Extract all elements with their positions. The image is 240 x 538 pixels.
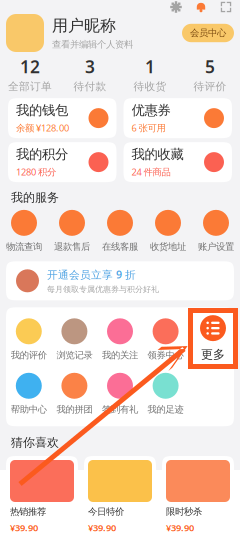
button[interactable]: 我的足迹 (143, 373, 188, 415)
staticText: ¥39.90 (88, 521, 116, 534)
staticText: 我的收藏 (131, 146, 183, 163)
staticText: 查看并编辑个人资料 (52, 39, 133, 50)
staticText: 浏览记录 (56, 349, 92, 361)
staticText: 开通会员立享 9 折 (47, 267, 136, 281)
staticText: ¥39.90 (10, 521, 38, 534)
staticText: 帮助中心 (11, 404, 47, 415)
staticText: 我的拼团 (56, 404, 92, 415)
staticText: 优惠券 (131, 102, 170, 119)
staticText: 更多 (202, 349, 220, 361)
button[interactable]: 设置 (170, 1, 182, 13)
staticText: 待收货 (133, 80, 166, 93)
button[interactable]: 今日特价 (84, 456, 156, 538)
staticText: 待评价 (193, 80, 226, 93)
staticText: 今日特价 (88, 506, 124, 517)
staticText: 我的评价 (11, 349, 47, 361)
staticText: 余额 ¥128.00 (16, 122, 69, 134)
staticText: 限时秒杀 (166, 506, 202, 517)
button[interactable]: 帮助中心 (6, 373, 52, 415)
button[interactable]: 浏览记录 (52, 318, 97, 361)
staticText: 我的积分 (16, 146, 68, 163)
button[interactable]: 签到有礼 (97, 373, 143, 415)
button[interactable]: 我的收藏 (123, 142, 232, 182)
staticText: 全部订单 (8, 80, 52, 93)
button[interactable]: 我的积分 (8, 142, 116, 182)
button[interactable]: 我的钱包 (8, 98, 116, 138)
staticText: 会员中心 (190, 27, 226, 39)
staticText: 6 张可用 (131, 122, 165, 134)
button[interactable]: 消息 (195, 1, 207, 13)
staticText: 3 (85, 55, 95, 78)
staticText: 退款售后 (54, 241, 90, 252)
button[interactable]: 热销推荐 (6, 456, 78, 538)
button[interactable]: 物流查询 (0, 210, 48, 252)
staticText: 领券中心 (148, 349, 184, 361)
button[interactable]: 退款售后 (48, 210, 96, 252)
button[interactable]: 3 (60, 55, 120, 93)
button[interactable]: 在线客服 (96, 210, 144, 252)
button[interactable]: 会员中心 (182, 24, 234, 42)
button[interactable]: 限时秒杀 (162, 456, 234, 538)
staticText: 我的足迹 (148, 404, 184, 415)
button[interactable]: 优惠券 (123, 98, 232, 138)
staticText: 我的服务 (11, 190, 59, 205)
staticText: 待付款 (73, 80, 106, 93)
staticText: 1 (145, 55, 155, 78)
staticText: 物流查询 (6, 241, 42, 252)
staticText: 热销推荐 (10, 506, 46, 517)
button[interactable]: 5 (180, 55, 240, 93)
staticText: 签到有礼 (102, 404, 138, 415)
staticText: 24 件商品 (131, 166, 170, 178)
staticText: 每月领取专属优惠券与积分好礼 (47, 284, 159, 294)
staticText: 更多 (201, 347, 225, 362)
button[interactable]: 账户设置 (192, 210, 240, 252)
button[interactable]: 12 (0, 55, 60, 93)
button[interactable]: 我的评价 (6, 318, 52, 361)
button[interactable]: 收货地址 (144, 210, 192, 252)
staticText: ¥39.90 (166, 521, 194, 534)
staticText: 账户设置 (198, 241, 234, 252)
staticText: 我的钱包 (16, 102, 68, 119)
button[interactable]: 我的关注 (97, 318, 143, 361)
staticText: 用户昵称 (52, 16, 116, 36)
button[interactable]: 1 (120, 55, 180, 93)
staticText: 猜你喜欢 (11, 435, 59, 450)
button[interactable]: 我的拼团 (52, 373, 97, 415)
staticText: 在线客服 (102, 241, 138, 252)
staticText: 收货地址 (150, 241, 186, 252)
button[interactable]: 更多 (188, 318, 234, 361)
button[interactable]: 更多 (188, 308, 238, 369)
button[interactable]: 领券中心 (143, 318, 188, 361)
button[interactable]: 开通会员立享 9 折 (6, 261, 234, 300)
staticText: 12 (20, 55, 40, 78)
staticText: 1280 积分 (16, 166, 56, 178)
staticText: 我的关注 (102, 349, 138, 361)
staticText: 5 (205, 55, 215, 78)
button[interactable]: 扫一扫 (220, 1, 232, 13)
